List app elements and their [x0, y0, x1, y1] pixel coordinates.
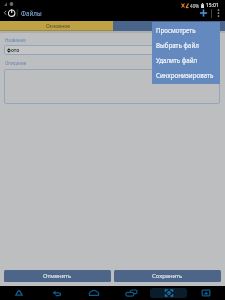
staticText: Удалить файл — [156, 56, 198, 64]
staticText: Просмотреть — [156, 26, 196, 34]
button[interactable]: Back — [0, 6, 18, 20]
button[interactable]: Back arrow — [49, 286, 65, 300]
staticText: Описание — [5, 60, 27, 66]
button[interactable]: Синхронизировать — [152, 67, 220, 82]
staticText: Название — [5, 37, 26, 43]
button[interactable]: More options — [213, 6, 224, 20]
staticText: Отменить — [43, 272, 72, 280]
button[interactable]: Home — [86, 286, 102, 300]
button[interactable]: Add — [197, 6, 210, 20]
button[interactable]: Просмотреть — [152, 22, 220, 37]
button[interactable]: Screenshot — [198, 286, 214, 300]
staticText: Основное — [46, 23, 70, 30]
button[interactable]: Back — [11, 286, 27, 300]
staticText: Выбрать файл — [156, 41, 199, 49]
staticText: 15:01 — [206, 2, 219, 9]
button[interactable]: Удалить файл — [152, 52, 220, 67]
staticText: Сохранить — [152, 272, 183, 280]
button[interactable]: Основное — [0, 21, 113, 31]
button[interactable]: Multi window — [161, 286, 177, 300]
button[interactable]: Выбрать файл — [152, 37, 220, 52]
staticText: 40% — [190, 3, 200, 9]
button[interactable]: Сохранить — [114, 270, 221, 282]
button[interactable]: Отменить — [4, 270, 111, 282]
staticText: фото — [7, 47, 20, 54]
staticText: Файлы — [21, 9, 42, 17]
staticText: Синхронизировать — [156, 71, 214, 79]
button[interactable]: Recent apps — [123, 286, 139, 300]
